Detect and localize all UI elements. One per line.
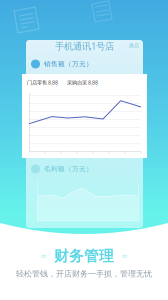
staticText: 财务管理 bbox=[54, 247, 114, 265]
staticText: 采购自采 8.88 bbox=[67, 79, 98, 86]
staticText: 门店零售 8.88 bbox=[27, 79, 58, 86]
button[interactable]: 换店 bbox=[126, 41, 142, 50]
staticText: 换店 bbox=[129, 42, 139, 49]
staticText: 毛利额（万元） bbox=[44, 165, 93, 173]
staticText: 销售额（万元） bbox=[44, 60, 93, 68]
staticText: 手机通讯1号店 bbox=[55, 40, 114, 52]
staticText: ∞ bbox=[40, 251, 47, 261]
button[interactable]: 手机通讯1号店 bbox=[55, 40, 114, 52]
staticText: ∞ bbox=[121, 251, 128, 261]
staticText: 轻松管钱，开店财务一手抓，管理无忧 bbox=[16, 269, 152, 279]
